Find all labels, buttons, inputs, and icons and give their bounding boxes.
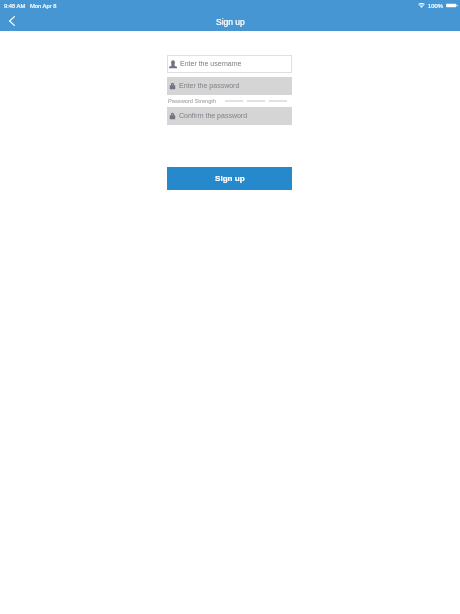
staticText: 9:48 AM: [4, 3, 26, 9]
button[interactable]: Enter the password: [167, 77, 292, 95]
staticText: Enter the password: [179, 82, 240, 90]
staticText: Sign up: [216, 17, 245, 26]
staticText: Sign up: [215, 174, 245, 183]
button[interactable]: Enter the username: [167, 55, 292, 73]
staticText: Mon Apr 8: [30, 3, 57, 9]
button[interactable]: Back: [0, 11, 23, 31]
button[interactable]: Confirm the password: [167, 107, 292, 125]
staticText: Enter the username: [180, 60, 242, 68]
staticText: 100%: [428, 3, 443, 9]
staticText: Password Strength: [168, 98, 217, 104]
staticText: Confirm the password: [179, 112, 248, 120]
button[interactable]: Sign up: [167, 167, 292, 190]
